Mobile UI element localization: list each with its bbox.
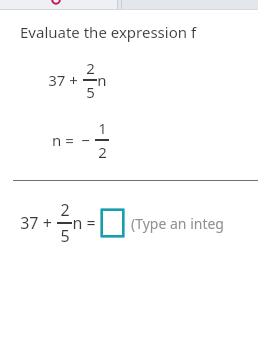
button[interactable]: Answer input bbox=[101, 209, 124, 237]
staticText: n bbox=[97, 70, 107, 90]
staticText: 37 + bbox=[48, 70, 78, 90]
staticText: Evaluate the expression f bbox=[20, 22, 197, 42]
staticText: (Type an integ bbox=[131, 214, 224, 233]
staticText: 37 + bbox=[20, 212, 52, 234]
staticText: 2 bbox=[86, 58, 95, 78]
staticText: − bbox=[81, 130, 90, 150]
staticText: 1 bbox=[98, 118, 107, 138]
other: Site icon bbox=[48, 0, 64, 4]
staticText: 5 bbox=[60, 225, 70, 247]
staticText: n = bbox=[72, 212, 96, 234]
staticText: 2 bbox=[98, 142, 107, 162]
staticText: 2 bbox=[60, 199, 70, 221]
staticText: n = bbox=[52, 130, 74, 150]
staticText: 5 bbox=[86, 82, 95, 102]
